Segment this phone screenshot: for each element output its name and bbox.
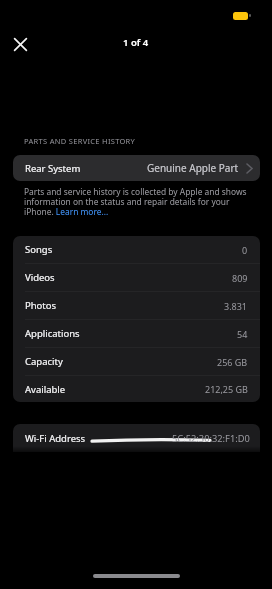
staticText: 809 <box>232 272 248 284</box>
staticText: 0 <box>242 244 248 256</box>
staticText: PARTS AND SERVICE HISTORY <box>24 136 136 146</box>
staticText: 212,25 GB <box>205 383 248 395</box>
staticText: 3.831 <box>224 300 248 312</box>
button[interactable]: Videos <box>25 264 248 291</box>
staticText: Parts and service history is collected b… <box>24 186 247 217</box>
staticText: Applications <box>25 327 80 340</box>
staticText: Photos <box>25 299 57 312</box>
staticText: 5C:52:30:32:F1:D0 <box>172 432 250 445</box>
staticText: 1 of 4 <box>123 36 149 49</box>
staticText: Capacity <box>25 355 63 368</box>
button[interactable] <box>10 34 31 55</box>
button[interactable]: Available <box>25 376 248 402</box>
staticText: 256 GB <box>217 356 248 368</box>
button[interactable]: Songs <box>25 236 248 263</box>
staticText: Available <box>25 383 66 396</box>
button[interactable]: Rear System <box>13 155 260 181</box>
staticText: Videos <box>25 271 55 284</box>
staticText: Rear System <box>25 162 81 175</box>
button[interactable]: Applications <box>25 320 248 347</box>
staticText: 54 <box>237 328 248 340</box>
staticText: Wi-Fi Address <box>25 432 86 445</box>
button[interactable]: Wi-Fi Address <box>13 424 260 452</box>
staticText: Songs <box>25 243 53 256</box>
button[interactable]: Photos <box>25 292 248 319</box>
button[interactable]: Capacity <box>25 348 248 375</box>
staticText: Genuine Apple Part <box>147 161 239 175</box>
